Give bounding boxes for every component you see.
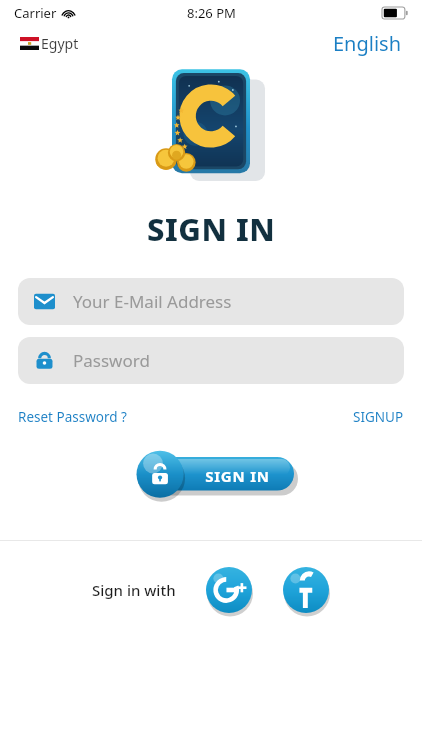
staticText: Sign in with — [92, 580, 176, 600]
button[interactable]: SIGN IN — [122, 448, 300, 504]
staticText: Reset Password ? — [18, 408, 127, 426]
staticText: 8:26 PM — [187, 4, 236, 22]
button[interactable]: Reset Password ? — [18, 408, 127, 426]
button[interactable]: Sign in with Google — [204, 565, 254, 615]
staticText: Password — [73, 349, 150, 372]
button[interactable]: Your E-Mail Address — [18, 278, 404, 325]
button[interactable]: SIGNUP — [353, 408, 404, 426]
staticText: SIGN IN — [205, 466, 270, 486]
staticText: Your E-Mail Address — [73, 290, 232, 313]
staticText: SIGN IN — [147, 208, 276, 250]
button[interactable]: Password — [18, 337, 404, 384]
staticText: English — [333, 30, 402, 57]
staticText: SIGNUP — [353, 408, 404, 426]
staticText: Egypt — [41, 34, 79, 53]
button[interactable]: Egypt — [20, 34, 79, 53]
button[interactable]: Sign in with Facebook — [281, 565, 331, 615]
staticText: Carrier — [14, 4, 57, 22]
button[interactable]: English — [333, 30, 402, 57]
